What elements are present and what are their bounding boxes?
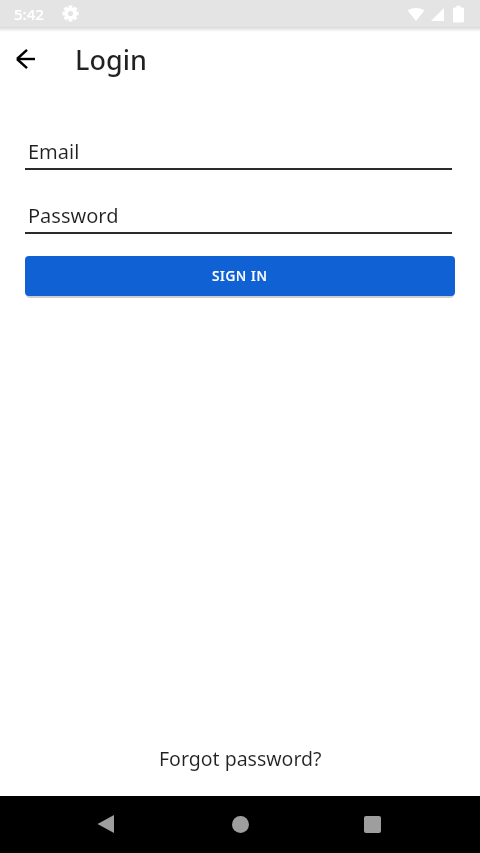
staticText: Password <box>28 202 119 229</box>
button[interactable]: Forgot password? <box>159 745 322 772</box>
button[interactable] <box>6 39 46 79</box>
button[interactable] <box>82 800 130 848</box>
button[interactable]: Password <box>25 202 452 234</box>
staticText: SIGN IN <box>212 267 268 285</box>
button[interactable]: SIGN IN <box>25 256 455 296</box>
staticText: 5:42 <box>14 4 44 24</box>
staticText: Login <box>75 41 147 78</box>
button[interactable]: Email <box>25 138 452 170</box>
staticText: Forgot password? <box>159 745 322 772</box>
staticText: Email <box>28 138 80 165</box>
button[interactable] <box>216 800 264 848</box>
button[interactable] <box>348 800 396 848</box>
